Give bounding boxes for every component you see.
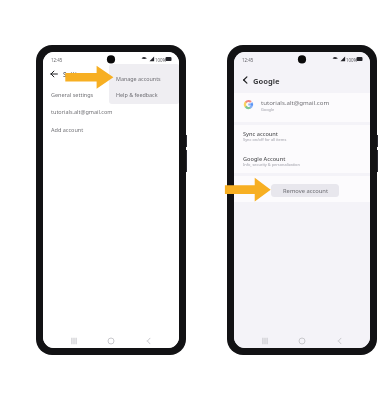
staticText: tutorials.alt@gmail.com	[51, 108, 113, 115]
staticText: tutorials.alt@gmail.com	[261, 98, 330, 106]
staticText: Sync account	[243, 130, 279, 138]
staticText: Manage accounts	[116, 75, 161, 82]
button[interactable]: Recent apps	[65, 332, 83, 348]
button[interactable]: Back	[331, 332, 349, 348]
staticText: 100%	[346, 57, 358, 63]
staticText: Google Account	[243, 155, 286, 163]
button[interactable]: Help & feedback	[109, 86, 179, 103]
button[interactable]: Navigate up	[238, 73, 252, 87]
staticText: Google	[253, 76, 280, 86]
staticText: Google	[261, 107, 275, 112]
staticText: Add account	[51, 126, 84, 133]
staticText: 12:45	[51, 57, 63, 63]
button[interactable]: Add account	[43, 121, 179, 138]
button[interactable]: Navigate up	[47, 67, 61, 81]
button[interactable]: tutorials.alt@gmail.com	[43, 103, 179, 120]
button[interactable]: Manage accounts	[109, 70, 179, 87]
button[interactable]: Home	[293, 332, 311, 348]
button[interactable]: General settings	[43, 86, 179, 103]
staticText: Info, security & personalization	[243, 162, 300, 167]
staticText: Help & feedback	[116, 91, 158, 98]
button[interactable]: Home	[102, 332, 120, 348]
button[interactable]: Remove account	[271, 184, 339, 197]
staticText: 100%	[155, 57, 167, 63]
button[interactable]: Google Account	[234, 146, 370, 170]
button[interactable]: Recent apps	[256, 332, 274, 348]
staticText: General settings	[51, 91, 94, 98]
staticText: Settings	[63, 70, 88, 79]
staticText: Remove account	[283, 187, 328, 195]
staticText: 12:45	[242, 57, 254, 63]
button[interactable]: tutorials.alt@gmail.com	[234, 93, 370, 122]
button[interactable]: Sync account	[234, 121, 370, 145]
button[interactable]: Back	[140, 332, 158, 348]
staticText: Sync on/off for all items	[243, 137, 287, 142]
